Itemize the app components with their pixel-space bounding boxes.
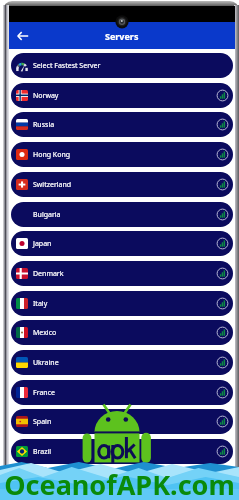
button[interactable]: Ukraine: [11, 350, 233, 375]
button[interactable]: Mexico: [11, 320, 233, 345]
button[interactable]: France: [11, 380, 233, 405]
button[interactable]: Hong Kong: [11, 142, 233, 167]
staticText: Spain: [33, 417, 52, 427]
staticText: Bulgaria: [33, 210, 61, 220]
staticText: Norway: [33, 91, 59, 101]
button[interactable]: Japan: [11, 231, 233, 256]
button[interactable]: Norway: [11, 83, 233, 108]
staticText: Japan: [33, 239, 52, 249]
staticText: Denmark: [33, 269, 64, 279]
staticText: Select Fastest Server: [33, 61, 101, 71]
button[interactable]: Back: [13, 26, 33, 46]
button[interactable]: Brazil: [11, 439, 233, 464]
button[interactable]: Italy: [11, 291, 233, 316]
staticText: Mexico: [33, 328, 57, 338]
staticText: Ukraine: [33, 358, 59, 368]
staticText: Italy: [33, 299, 48, 309]
staticText: Hong Kong: [33, 150, 71, 160]
staticText: Switzerland: [33, 180, 72, 190]
staticText: Servers: [105, 30, 139, 42]
button[interactable]: Russia: [11, 112, 233, 137]
staticText: Russia: [33, 120, 55, 130]
button[interactable]: Bulgaria: [11, 202, 233, 227]
button[interactable]: Spain: [11, 409, 233, 434]
staticText: France: [33, 388, 55, 398]
button[interactable]: Denmark: [11, 261, 233, 286]
button[interactable]: Select Fastest Server: [11, 53, 233, 78]
staticText: OceanofAPK.com: [4, 466, 235, 500]
button[interactable]: Switzerland: [11, 172, 233, 197]
staticText: Brazil: [33, 447, 52, 457]
